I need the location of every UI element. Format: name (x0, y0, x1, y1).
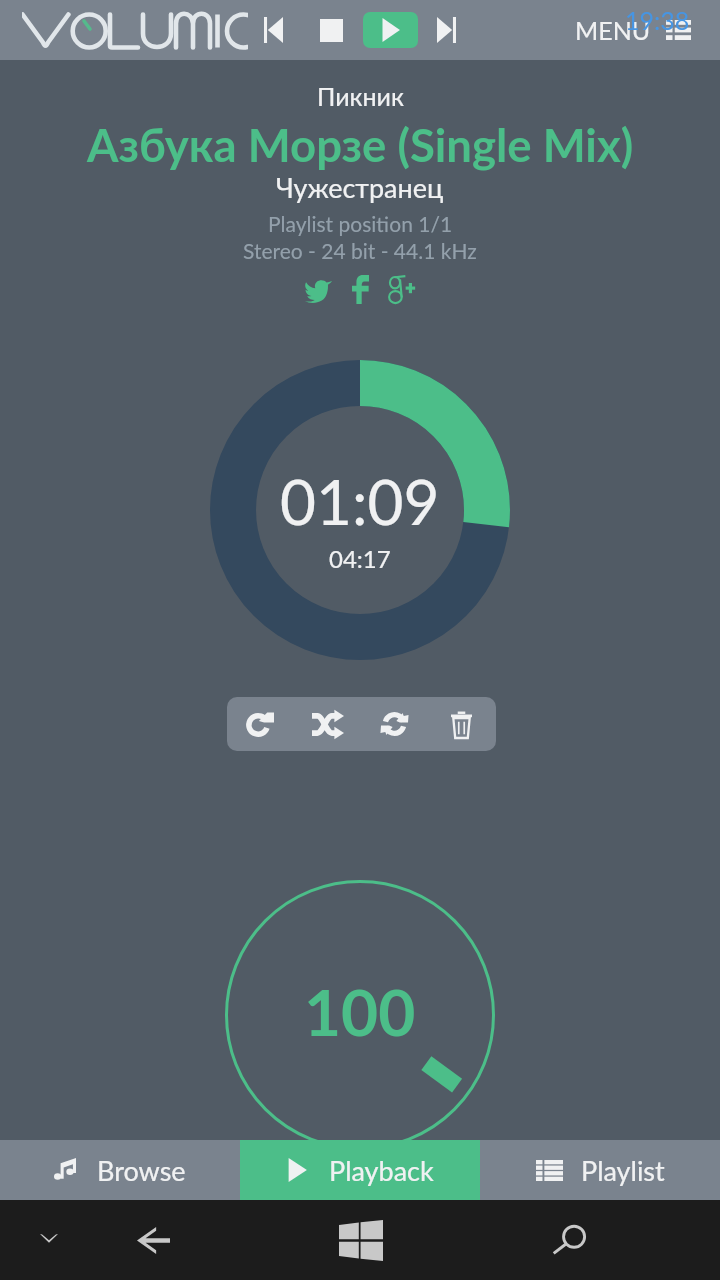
staticText: Playback (329, 1154, 434, 1186)
staticText: 01:09 (280, 464, 440, 538)
button[interactable]: Hide keyboard (9, 1200, 89, 1280)
staticText: Азбука Морзе (Single Mix) (87, 117, 634, 172)
staticText: Playlist (581, 1154, 665, 1186)
button[interactable]: MENU (575, 0, 695, 60)
button[interactable]: Stop (304, 0, 358, 60)
button[interactable]: Back (113, 1200, 193, 1280)
staticText: Browse (97, 1154, 186, 1186)
staticText: MENU (575, 15, 651, 45)
button[interactable]: Google Plus (381, 268, 423, 310)
button[interactable]: Next (419, 0, 473, 60)
button[interactable]: Twitter (297, 268, 339, 310)
button[interactable]: Home (321, 1200, 401, 1280)
button[interactable]: Volumio (22, 0, 248, 60)
staticText: Stereo - 24 bit - 44.1 kHz (243, 238, 477, 263)
staticText: 100 (304, 973, 416, 1050)
button[interactable]: Repeat one (227, 697, 294, 751)
button[interactable]: Search (530, 1200, 610, 1280)
button[interactable]: Playlist (480, 1140, 720, 1200)
button[interactable]: Playback (240, 1140, 480, 1200)
button[interactable]: Browse (0, 1140, 240, 1200)
staticText: 04:17 (329, 544, 391, 573)
button[interactable]: Clear queue (428, 697, 495, 751)
staticText: Пикник (317, 81, 404, 111)
button[interactable]: Play (363, 12, 418, 48)
staticText: Чужестранец (276, 171, 444, 203)
button[interactable]: Facebook (339, 268, 381, 310)
staticText: 19:38 (625, 5, 690, 35)
button[interactable]: Shuffle (294, 697, 361, 751)
button[interactable]: Repeat (361, 697, 428, 751)
staticText: Playlist position 1/1 (268, 211, 453, 236)
button[interactable]: Previous (246, 0, 300, 60)
button[interactable]: Volume (225, 880, 495, 1150)
